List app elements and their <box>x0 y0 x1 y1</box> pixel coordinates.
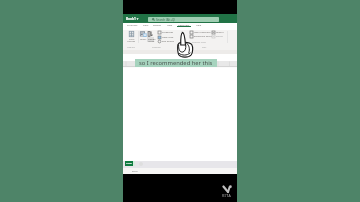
staticText: Add-ins <box>127 46 135 49</box>
staticText: Add-ins <box>127 40 136 43</box>
staticText: Mode <box>148 40 155 43</box>
staticText: Map Properties <box>194 31 211 34</box>
staticText: COM <box>129 38 135 41</box>
staticText: Run Dialog <box>162 40 174 43</box>
staticText: Export <box>216 35 224 38</box>
staticText: VITA <box>222 193 232 198</box>
staticText: Formulas <box>127 23 138 26</box>
button[interactable]: COM Add-ins <box>129 31 134 37</box>
staticText: Import <box>216 31 224 34</box>
button[interactable]: Data <box>142 23 149 29</box>
button[interactable]: Help <box>196 23 202 29</box>
staticText: XML <box>202 46 207 49</box>
staticText: Ready <box>132 170 138 173</box>
button[interactable]: Insert control <box>140 31 147 37</box>
staticText: Search (Alt+Q) <box>156 18 176 22</box>
button[interactable]: Add sheet <box>139 162 143 166</box>
button[interactable]: Export <box>212 35 224 38</box>
staticText: Insert <box>140 38 147 41</box>
staticText: Review <box>153 23 161 26</box>
staticText: so I recommended her this <box>139 59 213 67</box>
staticText: Book1 ▾ <box>126 17 139 21</box>
staticText: View Code <box>162 36 174 39</box>
staticText: View <box>167 23 173 26</box>
button[interactable]: Import <box>212 31 224 34</box>
button[interactable]: Properties <box>158 31 174 34</box>
staticText: Expansion Packs <box>194 35 212 38</box>
staticText: Help <box>196 23 202 26</box>
staticText: Properties <box>162 31 174 34</box>
staticText: Data <box>143 23 149 26</box>
button[interactable]: Run Dialog <box>158 40 174 43</box>
button[interactable]: Formulas <box>126 23 138 29</box>
staticText: Refresh Data <box>192 41 206 44</box>
button[interactable]: Search (Alt+Q) <box>148 17 219 22</box>
button[interactable]: Sheet1 <box>125 161 133 166</box>
staticText: Developer <box>178 23 190 26</box>
button[interactable]: View <box>166 23 173 29</box>
button[interactable]: Design Mode <box>148 31 153 37</box>
button[interactable]: so I recommended her this <box>135 59 217 67</box>
button[interactable]: Expansion Packs <box>190 35 212 38</box>
staticText: Sheet1 <box>126 162 133 165</box>
button[interactable]: Map Properties <box>190 31 211 34</box>
button[interactable]: Developer <box>177 23 191 29</box>
button[interactable]: View Code <box>158 36 174 39</box>
staticText: Design <box>148 38 156 41</box>
staticText: Controls <box>152 46 161 49</box>
button[interactable]: Review <box>152 23 161 29</box>
